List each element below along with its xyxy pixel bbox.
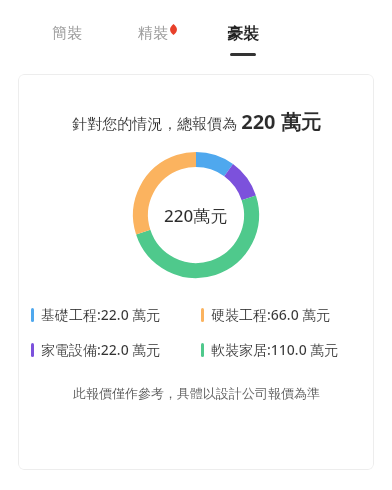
- button[interactable]: 豪裝: [223, 0, 263, 56]
- staticText: 簡裝: [52, 24, 82, 43]
- staticText: 此報價僅作參考，具體以設計公司報價為準: [73, 385, 320, 401]
- staticText: 基礎工程:22.0 萬元: [41, 305, 161, 324]
- staticText: 軟裝家居:110.0 萬元: [211, 340, 339, 359]
- button[interactable]: 軟裝家居:110.0 萬元: [201, 340, 371, 359]
- staticText: 精裝: [138, 24, 168, 43]
- button[interactable]: 硬裝工程:66.0 萬元: [201, 305, 371, 324]
- button[interactable]: 精裝: [134, 0, 183, 43]
- button[interactable]: 基礎工程:22.0 萬元: [31, 305, 201, 324]
- staticText: 220萬元: [164, 204, 228, 227]
- staticText: 豪裝: [227, 24, 259, 44]
- button[interactable]: 簡裝: [48, 0, 86, 43]
- staticText: 針對您的情況，總報價為 220 萬元: [72, 108, 321, 135]
- button[interactable]: 家電設備:22.0 萬元: [31, 340, 201, 359]
- staticText: 硬裝工程:66.0 萬元: [211, 305, 331, 324]
- staticText: 家電設備:22.0 萬元: [41, 340, 161, 359]
